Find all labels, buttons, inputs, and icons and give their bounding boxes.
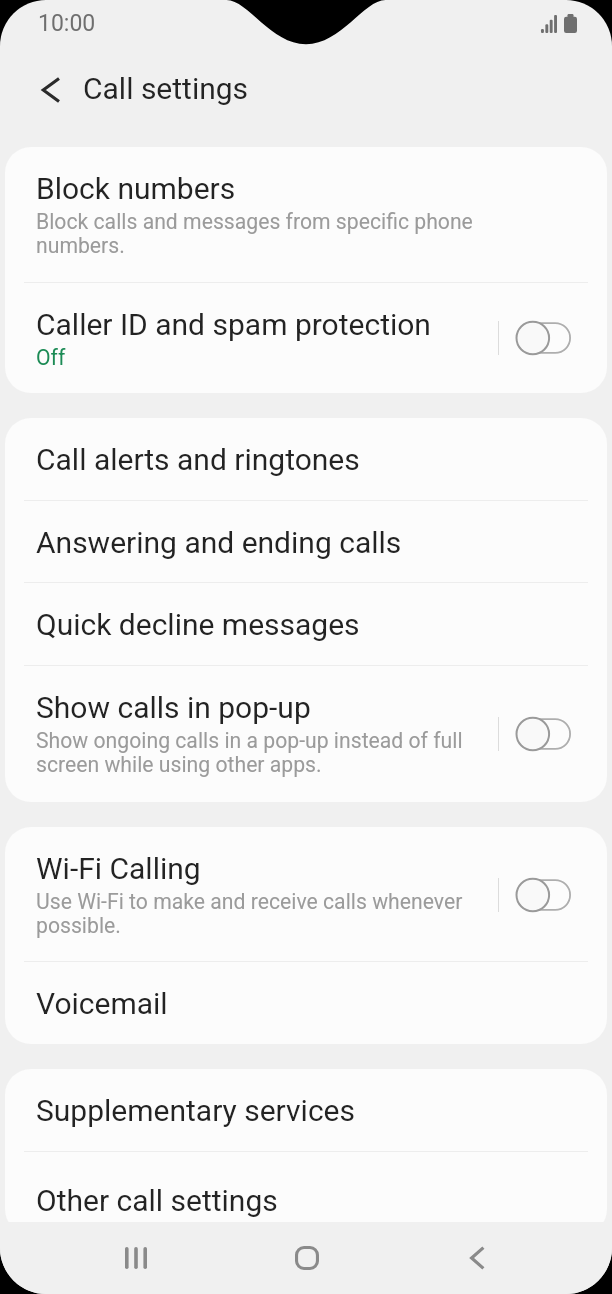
staticText: Off	[36, 345, 66, 370]
button[interactable]: Back	[420, 1222, 535, 1294]
staticText: Wi-Fi Calling	[36, 851, 201, 886]
button[interactable]: Answering and ending calls	[5, 501, 607, 583]
staticText: Use Wi-Fi to make and receive calls when…	[36, 889, 486, 939]
staticText: 10:00	[38, 10, 96, 37]
button[interactable]: Call alerts and ringtones	[5, 418, 607, 501]
button[interactable]: Block numbers	[5, 147, 607, 283]
button[interactable]: Toggle setting	[517, 878, 571, 912]
button[interactable]: Other call settings	[5, 1152, 607, 1235]
staticText: Call alerts and ringtones	[36, 442, 360, 477]
button[interactable]: Toggle setting	[517, 321, 571, 355]
staticText: Show calls in pop-up	[36, 690, 311, 725]
button[interactable]: Toggle setting	[517, 717, 571, 751]
staticText: Voicemail	[36, 986, 168, 1021]
staticText: Other call settings	[36, 1183, 278, 1218]
button[interactable]: Recent apps	[78, 1222, 193, 1294]
staticText: Answering and ending calls	[36, 525, 402, 560]
button[interactable]: Navigate up	[31, 68, 75, 112]
button[interactable]: Supplementary services	[5, 1069, 607, 1152]
staticText: Quick decline messages	[36, 607, 360, 642]
button[interactable]: Show calls in pop-up	[5, 666, 607, 802]
staticText: Call settings	[83, 71, 249, 106]
button[interactable]: Caller ID and spam protection	[5, 283, 607, 393]
staticText: Show ongoing calls in a pop-up instead o…	[36, 728, 486, 778]
staticText: Supplementary services	[36, 1093, 355, 1128]
staticText: Block calls and messages from specific p…	[36, 209, 486, 259]
button[interactable]: Quick decline messages	[5, 583, 607, 666]
button[interactable]: Home	[193, 1222, 420, 1294]
staticText: Block numbers	[36, 171, 236, 206]
button[interactable]: Wi-Fi Calling	[5, 827, 607, 962]
staticText: Caller ID and spam protection	[36, 307, 431, 342]
button[interactable]: Voicemail	[5, 962, 607, 1044]
